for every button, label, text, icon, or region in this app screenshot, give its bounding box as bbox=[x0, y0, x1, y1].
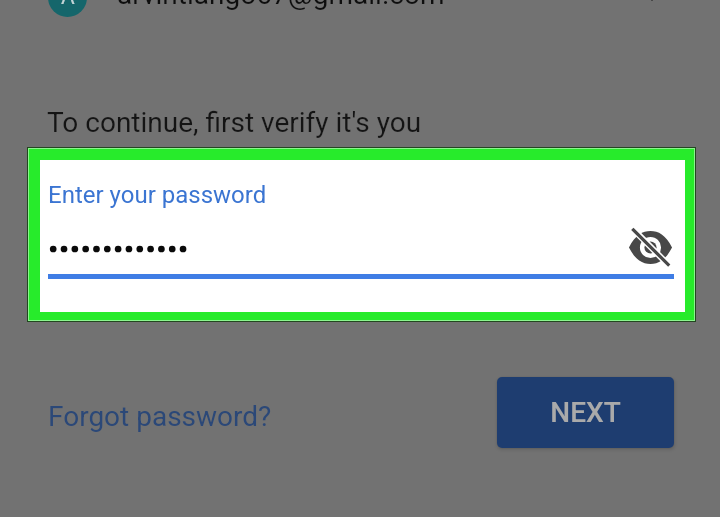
staticText: Forgot password? bbox=[48, 400, 272, 433]
staticText: Enter your password bbox=[48, 181, 267, 209]
button[interactable]: Hide password bbox=[617, 214, 683, 280]
button[interactable]: Enter your password bbox=[40, 160, 685, 312]
staticText: NEXT bbox=[550, 396, 621, 429]
button[interactable]: NEXT bbox=[497, 377, 674, 448]
button[interactable]: Account bbox=[48, 0, 87, 17]
staticText: arvintiango67@gmail.com bbox=[117, 0, 445, 11]
other: Expand account bbox=[643, 0, 661, 6]
button[interactable]: Forgot password? bbox=[36, 392, 284, 441]
staticText: A bbox=[61, 0, 75, 10]
staticText: To continue, first verify it's you bbox=[47, 106, 422, 139]
